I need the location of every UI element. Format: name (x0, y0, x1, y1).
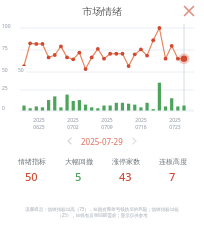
staticText: 100 (2, 23, 11, 30)
staticText: 0 (2, 105, 5, 112)
button[interactable]: 连板高度 (149, 157, 196, 184)
staticText: 2025 0716 (135, 117, 147, 131)
staticText: 25 (2, 85, 8, 92)
staticText: 2025 0723 (169, 117, 181, 131)
button[interactable]: 涨停家数 (102, 157, 149, 184)
staticText: 2025 0709 (101, 117, 113, 131)
button[interactable]: 情绪指标 (8, 157, 55, 184)
staticText: 2025-07-29 (81, 136, 123, 147)
staticText: 75 (2, 45, 8, 52)
button[interactable]: Next day (127, 134, 141, 148)
button[interactable]: 大幅回撤 (55, 157, 102, 184)
staticText: 43 (119, 169, 132, 184)
staticText: 5 (75, 169, 82, 184)
staticText: 50 (25, 169, 38, 184)
staticText: 2025 0625 (33, 117, 45, 131)
staticText: 情绪指标 (18, 157, 46, 166)
staticText: 50 (18, 67, 24, 74)
button[interactable]: Close (181, 3, 197, 19)
staticText: 大幅回撤 (65, 157, 93, 166)
staticText: 2025 0702 (67, 117, 79, 131)
staticText: 7 (169, 169, 176, 184)
staticText: 市场情绪 (82, 5, 122, 18)
staticText: 连板高度 (159, 157, 187, 166)
staticText: 50 (2, 67, 8, 74)
staticText: 温馨提示：情绪指标过高（75），短期有释放号钱跌后的风险；情绪指标过低 (25, 206, 179, 212)
staticText: 涨停家数 (112, 157, 140, 166)
staticText: （25），短线有反弹回暖需求；显示仅供参考 (57, 212, 148, 218)
button[interactable]: Previous day (63, 134, 77, 148)
